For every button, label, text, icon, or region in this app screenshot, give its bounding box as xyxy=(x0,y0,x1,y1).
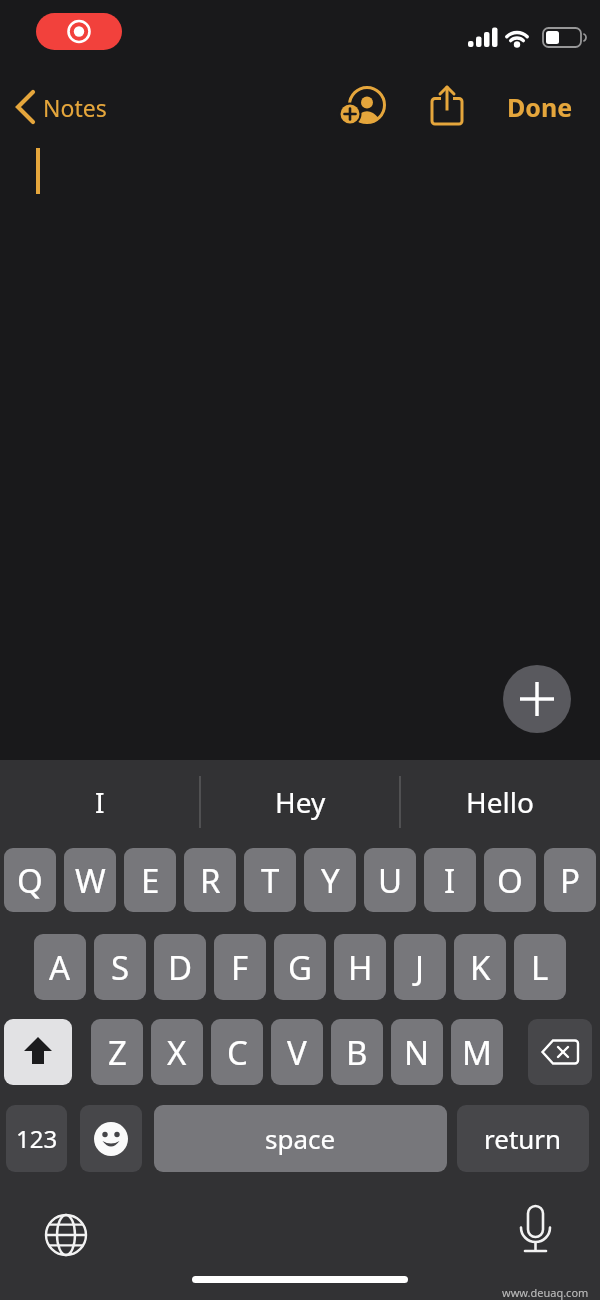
button[interactable]: F xyxy=(214,934,266,1000)
button[interactable]: R xyxy=(184,848,236,912)
button[interactable]: S xyxy=(94,934,146,1000)
button[interactable] xyxy=(4,1019,72,1085)
staticText: E xyxy=(141,858,160,903)
button[interactable] xyxy=(528,1019,592,1085)
staticText: B xyxy=(346,1030,368,1075)
button[interactable] xyxy=(512,1200,560,1262)
staticText: Y xyxy=(321,858,340,903)
staticText: 123 xyxy=(16,1122,58,1155)
staticText: space xyxy=(265,1121,336,1156)
staticText: Z xyxy=(108,1030,127,1075)
staticText: G xyxy=(288,945,313,990)
staticText: I xyxy=(95,783,105,821)
staticText: P xyxy=(560,858,580,903)
button[interactable]: J xyxy=(394,934,446,1000)
staticText: S xyxy=(111,945,130,990)
button[interactable]: N xyxy=(391,1019,443,1085)
button[interactable]: Z xyxy=(91,1019,143,1085)
button[interactable]: Hello xyxy=(400,760,600,844)
staticText: R xyxy=(200,858,221,903)
button[interactable]: X xyxy=(151,1019,203,1085)
staticText: K xyxy=(470,945,491,990)
button[interactable]: W xyxy=(64,848,116,912)
button[interactable]: 123 xyxy=(6,1105,67,1172)
staticText: T xyxy=(261,858,280,903)
staticText: Q xyxy=(17,858,43,903)
button[interactable]: U xyxy=(364,848,416,912)
button[interactable]: space xyxy=(154,1105,447,1172)
button[interactable]: H xyxy=(334,934,386,1000)
staticText: F xyxy=(231,945,249,990)
staticText: C xyxy=(227,1030,248,1075)
button[interactable] xyxy=(334,80,390,130)
staticText: J xyxy=(415,945,425,990)
staticText: O xyxy=(497,858,523,903)
button[interactable]: E xyxy=(124,848,176,912)
button[interactable]: O xyxy=(484,848,536,912)
button[interactable]: K xyxy=(454,934,506,1000)
staticText: U xyxy=(378,858,403,903)
staticText: www.deuaq.com xyxy=(502,1285,589,1300)
staticText: M xyxy=(462,1030,492,1075)
staticText: Hello xyxy=(466,783,534,821)
staticText: X xyxy=(167,1030,187,1075)
staticText: H xyxy=(348,945,373,990)
button[interactable]: Q xyxy=(4,848,56,912)
button[interactable]: M xyxy=(451,1019,503,1085)
staticText: V xyxy=(287,1030,307,1075)
staticText: D xyxy=(168,945,193,990)
staticText: A xyxy=(49,945,71,990)
button[interactable] xyxy=(36,13,122,50)
staticText: N xyxy=(404,1030,430,1075)
button[interactable]: C xyxy=(211,1019,263,1085)
button[interactable]: Done xyxy=(498,88,582,126)
staticText: L xyxy=(531,945,549,990)
button[interactable]: D xyxy=(154,934,206,1000)
staticText: return xyxy=(484,1121,562,1156)
button[interactable]: Hey xyxy=(200,760,400,844)
button[interactable]: G xyxy=(274,934,326,1000)
button[interactable]: return xyxy=(457,1105,589,1172)
button[interactable]: Y xyxy=(304,848,356,912)
button[interactable]: B xyxy=(331,1019,383,1085)
staticText: I xyxy=(444,858,456,903)
staticText: Done xyxy=(507,90,573,124)
button[interactable] xyxy=(425,82,469,130)
button[interactable]: I xyxy=(424,848,476,912)
button[interactable]: P xyxy=(544,848,596,912)
button[interactable]: A xyxy=(34,934,86,1000)
staticText: W xyxy=(75,858,106,903)
staticText: Hey xyxy=(275,783,326,821)
button[interactable]: T xyxy=(244,848,296,912)
button[interactable] xyxy=(40,1209,92,1261)
staticText: Notes xyxy=(43,92,107,123)
button[interactable]: L xyxy=(514,934,566,1000)
button[interactable] xyxy=(503,665,571,733)
button[interactable] xyxy=(80,1105,142,1172)
button[interactable]: Notes xyxy=(14,88,107,126)
button[interactable]: V xyxy=(271,1019,323,1085)
button[interactable]: I xyxy=(0,760,200,844)
